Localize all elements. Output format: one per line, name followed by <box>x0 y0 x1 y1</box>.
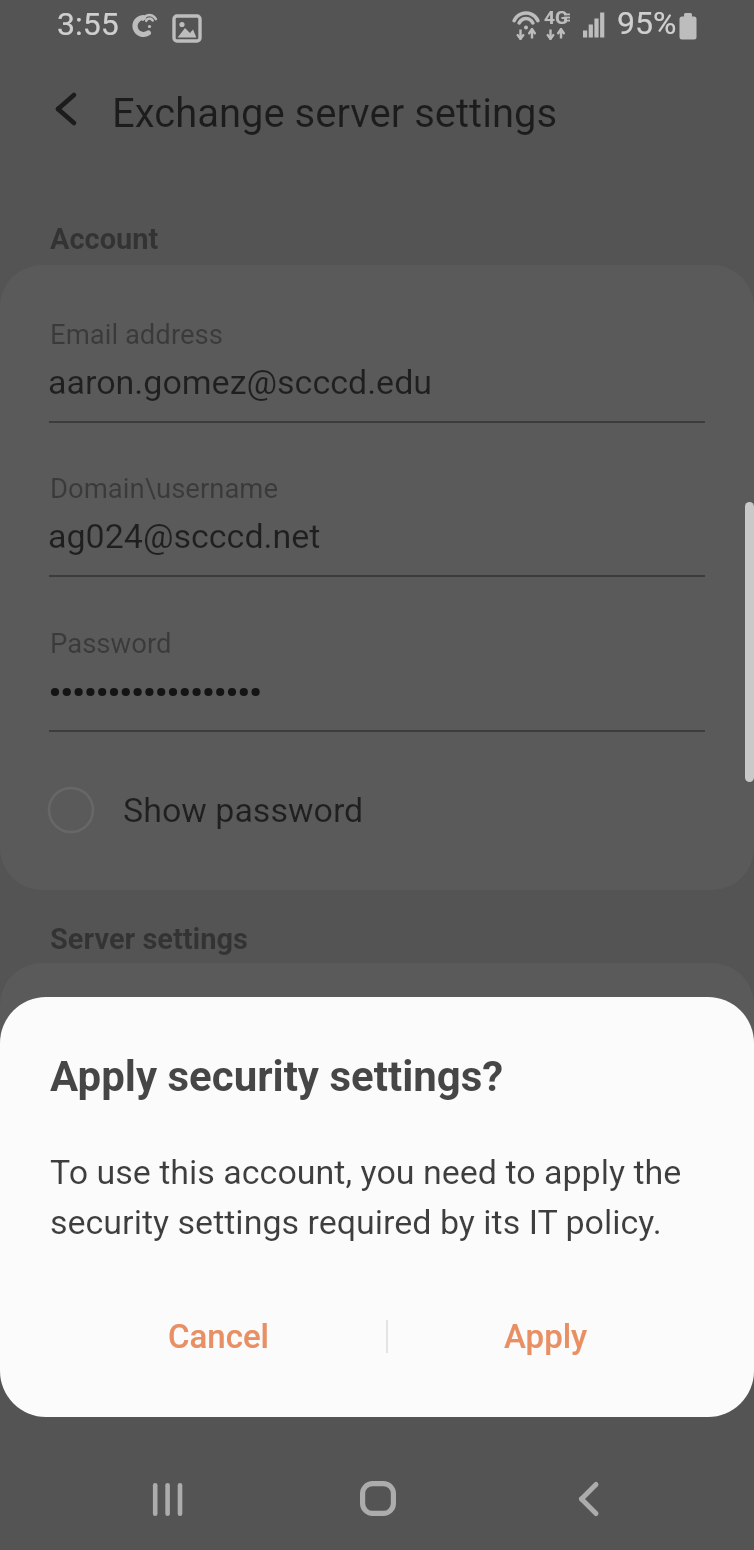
button[interactable]: Back <box>540 1450 638 1548</box>
staticText: Cancel <box>168 1317 270 1356</box>
staticText: Show password <box>123 790 364 830</box>
staticText: Apply <box>504 1317 588 1356</box>
staticText: aaron.gomez@scccd.edu <box>48 362 433 402</box>
staticText: 95% <box>617 4 677 42</box>
staticText: Domain\username <box>50 472 279 504</box>
staticText: ag024@scccd.net <box>48 516 321 556</box>
staticText: Exchange server settings <box>112 90 558 137</box>
button[interactable]: Navigate up <box>34 76 100 142</box>
staticText: Account <box>50 222 159 256</box>
button[interactable]: Recent apps <box>119 1450 217 1548</box>
button[interactable]: Home <box>329 1449 427 1547</box>
staticText: Server settings <box>50 922 248 956</box>
staticText: 4G <box>544 6 568 28</box>
staticText: To use this account, you need to apply t… <box>50 1152 682 1243</box>
button[interactable]: Apply <box>387 1293 705 1379</box>
button[interactable]: Cancel <box>50 1293 387 1379</box>
staticText: Email address <box>50 318 223 350</box>
staticText: 3:55 <box>57 5 119 43</box>
staticText: Password <box>50 627 172 659</box>
staticText: Apply security settings? <box>50 1052 504 1101</box>
button[interactable]: Show password <box>44 780 384 840</box>
